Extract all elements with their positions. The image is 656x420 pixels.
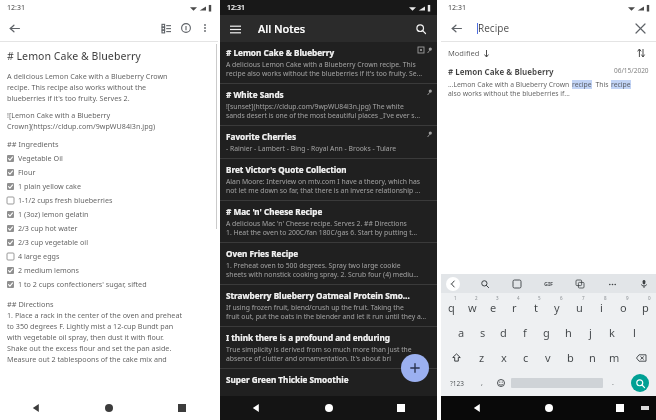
button[interactable]: Search (411, 19, 431, 39)
button[interactable]: , (473, 370, 491, 396)
button[interactable]: Stickers (510, 277, 524, 291)
button[interactable]: # Lemon Cake & Blueberry (441, 64, 656, 102)
button[interactable]: 8 (590, 293, 612, 320)
button[interactable]: 1 (3oz) lemon gelatin (7, 207, 209, 221)
button[interactable]: k (601, 320, 623, 345)
button[interactable]: More (605, 277, 619, 291)
button[interactable]: a (451, 320, 472, 345)
button[interactable]: Clear (631, 19, 649, 37)
button[interactable]: ?123 (441, 370, 473, 396)
staticText: ?123 (450, 379, 464, 388)
button[interactable]: Recents (391, 398, 411, 418)
button[interactable]: Search (478, 277, 492, 291)
staticText: 2/3 cup hot water (18, 223, 78, 233)
button[interactable]: # White Sands (220, 84, 437, 125)
button[interactable]: 2 (462, 293, 483, 320)
button[interactable]: s (472, 320, 493, 345)
button[interactable]: Back (446, 277, 460, 291)
button[interactable]: j (579, 320, 601, 345)
staticText: h (565, 325, 572, 340)
button[interactable]: Checklist (156, 18, 176, 38)
button[interactable]: Voice input (637, 277, 651, 291)
button[interactable]: Modified (448, 48, 490, 58)
button[interactable]: Home (539, 398, 559, 418)
button[interactable]: 5 (525, 293, 546, 320)
button[interactable]: 3 (483, 293, 504, 320)
button[interactable]: New note (401, 354, 429, 382)
button[interactable]: 4 (504, 293, 525, 320)
button[interactable]: GIF (542, 280, 556, 287)
staticText: 1. Place a rack in the center of the ove… (7, 310, 183, 364)
button[interactable]: Vegetable Oil (7, 151, 209, 165)
button[interactable]: Home (319, 398, 339, 418)
button[interactable]: # Mac 'n' Cheese Recipe (220, 201, 437, 242)
button[interactable]: 1 plain yellow cake (7, 179, 209, 193)
button[interactable]: Favorite Cherries (220, 126, 437, 158)
button[interactable]: Back (446, 18, 466, 38)
button[interactable]: Strawberry Blueberry Oatmeal Protein Smo… (220, 285, 437, 326)
button[interactable]: Recents (172, 398, 192, 418)
button[interactable]: x (493, 345, 515, 370)
staticText: Alan Moore: Interview on mtv.com I have … (226, 177, 421, 195)
button[interactable]: Super Green Thickie Smoothie (220, 369, 437, 390)
button[interactable]: 7 (568, 293, 590, 320)
button[interactable]: Back (467, 398, 487, 418)
button[interactable]: g (535, 320, 557, 345)
button[interactable]: Bret Victor's Quote Collection (220, 159, 437, 200)
staticText: Favorite Cherries (226, 131, 412, 142)
button[interactable]: f (514, 320, 535, 345)
staticText: This (592, 80, 611, 89)
button[interactable]: c (515, 345, 537, 370)
button[interactable]: Recents (610, 398, 630, 418)
button[interactable]: 1 to 2 cups confectioners' sugar, sifted (7, 277, 209, 291)
staticText: m (609, 350, 620, 365)
button[interactable]: h (557, 320, 579, 345)
staticText: # Lemon Cake & Blueberry (448, 66, 554, 77)
button[interactable]: 4 large eggs (7, 249, 209, 263)
staticText: t (534, 300, 538, 315)
button[interactable]: Back (4, 18, 24, 38)
button[interactable]: 2/3 cup vegetable oil (7, 235, 209, 249)
button[interactable]: Back (246, 398, 266, 418)
button[interactable]: More options (196, 19, 214, 37)
button[interactable]: d (493, 320, 514, 345)
button[interactable]: Home (99, 398, 119, 418)
button[interactable]: Shift (441, 345, 471, 370)
staticText: Modified (448, 48, 480, 58)
button[interactable]: Menu (225, 19, 245, 39)
button[interactable]: z (471, 345, 493, 370)
button[interactable]: 2/3 cup hot water (7, 221, 209, 235)
button[interactable]: # Lemon Cake & Blueberry (220, 42, 437, 83)
button[interactable]: m (603, 345, 625, 370)
staticText: True simplicity is derived from so much … (226, 345, 412, 363)
button[interactable]: Emoji (491, 370, 511, 396)
button[interactable]: Flour (7, 165, 209, 179)
staticText: # White Sands (226, 89, 412, 100)
button[interactable]: 1-1/2 cups fresh blueberries (7, 193, 209, 207)
button[interactable]: Info (176, 18, 196, 38)
staticText: w (468, 300, 477, 315)
button[interactable]: Backspace (625, 345, 656, 370)
staticText: r (512, 300, 517, 315)
button[interactable]: 1 (441, 293, 462, 320)
staticText: 3 (496, 295, 499, 301)
button[interactable]: 9 (612, 293, 634, 320)
button[interactable]: . (603, 370, 623, 396)
button[interactable]: 0 (634, 293, 656, 320)
button[interactable]: I think there is a profound and enduring (220, 327, 437, 368)
button[interactable]: v (537, 345, 559, 370)
button[interactable]: Hide keyboard (638, 401, 652, 415)
button[interactable]: Translate (573, 277, 587, 291)
button[interactable]: Back (26, 398, 46, 418)
button[interactable]: l (623, 320, 645, 345)
button[interactable]: 2 medium lemons (7, 263, 209, 277)
button[interactable]: Oven Fries Recipe (220, 243, 437, 284)
button[interactable]: Search (631, 374, 649, 392)
button[interactable]: n (581, 345, 603, 370)
button[interactable]: Sort order (633, 45, 649, 61)
button[interactable]: b (559, 345, 581, 370)
button[interactable]: 6 (546, 293, 568, 320)
staticText: GIF (544, 280, 554, 287)
staticText: A delicious Mac 'n' Cheese recipe. Serve… (226, 219, 418, 237)
